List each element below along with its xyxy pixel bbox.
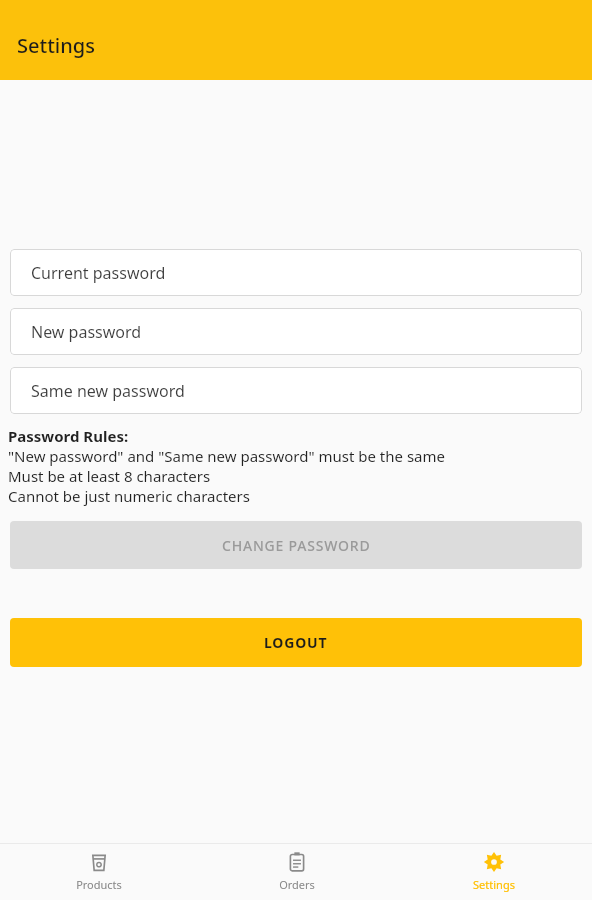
button[interactable]: Current password: [10, 249, 582, 296]
staticText: CHANGE PASSWORD: [222, 536, 371, 555]
staticText: LOGOUT: [264, 633, 328, 652]
staticText: Current password: [31, 262, 166, 284]
button[interactable]: Same new password: [10, 367, 582, 414]
button[interactable]: LOGOUT: [10, 618, 582, 667]
button[interactable]: Orders: [198, 843, 395, 900]
staticText: Settings: [17, 32, 95, 59]
button[interactable]: CHANGE PASSWORD: [10, 521, 582, 569]
staticText: Same new password: [31, 380, 185, 402]
staticText: Orders: [279, 877, 315, 892]
staticText: "New password" and "Same new password" m…: [8, 446, 445, 466]
staticText: Settings: [473, 877, 515, 892]
staticText: Must be at least 8 characters: [8, 466, 211, 486]
staticText: Password Rules:: [8, 426, 129, 446]
button[interactable]: Settings: [395, 843, 592, 900]
button[interactable]: Products: [0, 843, 198, 900]
staticText: New password: [31, 321, 142, 343]
staticText: Products: [76, 877, 122, 892]
button[interactable]: New password: [10, 308, 582, 355]
staticText: Cannot be just numeric characters: [8, 486, 250, 506]
